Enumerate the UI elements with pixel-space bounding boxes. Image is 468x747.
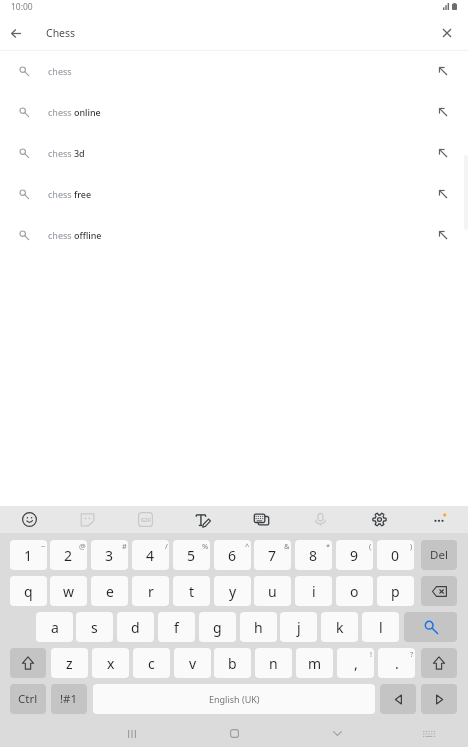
button[interactable]: u: [254, 576, 291, 606]
button[interactable]: English (UK): [93, 684, 375, 714]
button[interactable]: Insert suggestion: [427, 91, 459, 132]
button[interactable]: Clear search: [431, 16, 463, 50]
button[interactable]: Ctrl: [10, 684, 46, 714]
staticText: #: [122, 541, 127, 551]
button[interactable]: n: [255, 648, 292, 678]
button[interactable]: y: [214, 576, 251, 606]
button[interactable]: f: [158, 612, 195, 642]
button[interactable]: l: [362, 612, 399, 642]
button[interactable]: p: [377, 576, 414, 606]
button[interactable]: d: [117, 612, 154, 642]
button[interactable]: 0: [377, 540, 414, 570]
staticText: r: [148, 582, 154, 601]
staticText: GIF: [141, 516, 151, 524]
button[interactable]: Move cursor right: [421, 684, 457, 714]
staticText: chess online: [48, 106, 101, 118]
button[interactable]: 7: [254, 540, 291, 570]
button[interactable]: h: [240, 612, 277, 642]
button[interactable]: layout: [232, 506, 291, 533]
staticText: chess: [48, 65, 72, 77]
staticText: 4: [146, 546, 155, 565]
button[interactable]: c: [133, 648, 170, 678]
staticText: j: [297, 618, 301, 637]
button[interactable]: chess 3d: [0, 132, 468, 173]
button[interactable]: q: [10, 576, 47, 606]
button[interactable]: settings: [350, 506, 409, 533]
button[interactable]: Change keyboard: [411, 717, 446, 747]
staticText: Chess: [46, 26, 76, 40]
staticText: i: [312, 582, 316, 601]
button[interactable]: emoji: [0, 506, 58, 533]
staticText: y: [229, 582, 237, 601]
button[interactable]: e: [91, 576, 128, 606]
button[interactable]: Shift: [10, 648, 46, 678]
staticText: e: [106, 582, 114, 601]
button[interactable]: sticker: [58, 506, 116, 533]
button[interactable]: k: [321, 612, 358, 642]
button[interactable]: Home: [214, 717, 254, 747]
button[interactable]: .: [378, 648, 415, 678]
button[interactable]: 8: [295, 540, 332, 570]
staticText: .: [395, 654, 399, 673]
button[interactable]: a: [36, 612, 73, 642]
button[interactable]: Search: [404, 612, 457, 642]
button[interactable]: Hide keyboard: [317, 717, 357, 747]
staticText: 1: [24, 546, 33, 565]
button[interactable]: Shift: [421, 648, 457, 678]
staticText: f: [174, 618, 179, 637]
button[interactable]: textedit: [174, 506, 232, 533]
staticText: w: [63, 582, 75, 601]
staticText: !#1: [60, 691, 78, 707]
staticText: 2: [64, 546, 73, 565]
button[interactable]: Insert suggestion: [427, 50, 459, 91]
button[interactable]: 5: [173, 540, 210, 570]
staticText: chess offline: [48, 229, 102, 241]
button[interactable]: 2: [50, 540, 87, 570]
staticText: k: [336, 618, 344, 637]
button[interactable]: chess free: [0, 173, 468, 214]
staticText: Del: [430, 547, 448, 563]
staticText: @: [79, 541, 86, 551]
button[interactable]: 9: [336, 540, 373, 570]
button[interactable]: 4: [132, 540, 169, 570]
button[interactable]: w: [50, 576, 87, 606]
staticText: 5: [187, 546, 196, 565]
button[interactable]: chess online: [0, 91, 468, 132]
button[interactable]: r: [132, 576, 169, 606]
staticText: p: [391, 582, 400, 601]
button[interactable]: gif: [116, 506, 174, 533]
button[interactable]: ,: [337, 648, 374, 678]
button[interactable]: !#1: [51, 684, 87, 714]
button[interactable]: 3: [91, 540, 128, 570]
button[interactable]: b: [214, 648, 251, 678]
button[interactable]: 1: [10, 540, 47, 570]
staticText: ~: [41, 541, 46, 551]
button[interactable]: Backspace: [421, 576, 457, 606]
button[interactable]: z: [51, 648, 88, 678]
button[interactable]: Recents: [112, 717, 152, 747]
button[interactable]: m: [296, 648, 333, 678]
button[interactable]: x: [92, 648, 129, 678]
button[interactable]: i: [295, 576, 332, 606]
button[interactable]: o: [336, 576, 373, 606]
staticText: 8: [309, 546, 318, 565]
staticText: (: [369, 541, 372, 551]
button[interactable]: chess: [0, 50, 468, 91]
button[interactable]: s: [76, 612, 113, 642]
button[interactable]: Del: [421, 540, 457, 570]
button[interactable]: mic: [291, 506, 350, 533]
button[interactable]: chess offline: [0, 214, 468, 255]
staticText: English (UK): [209, 693, 260, 705]
button[interactable]: Insert suggestion: [427, 214, 459, 255]
button[interactable]: j: [280, 612, 317, 642]
button[interactable]: Insert suggestion: [427, 132, 459, 173]
staticText: ): [410, 541, 413, 551]
button[interactable]: v: [174, 648, 211, 678]
button[interactable]: 6: [214, 540, 251, 570]
button[interactable]: t: [173, 576, 210, 606]
button[interactable]: more: [409, 506, 468, 533]
button[interactable]: g: [199, 612, 236, 642]
button[interactable]: Insert suggestion: [427, 173, 459, 214]
button[interactable]: Back: [0, 16, 31, 50]
button[interactable]: Move cursor left: [380, 684, 416, 714]
